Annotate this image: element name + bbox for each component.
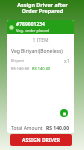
staticText: 1 ITEM [7, 37, 74, 44]
staticText: #789001234 [16, 21, 45, 28]
staticText: Total Amount [11, 125, 43, 132]
staticText: Veg Biriyani(Boneless) [11, 48, 63, 55]
staticText: Biryani [11, 58, 25, 63]
staticText: ASSIGN DRIVER [22, 137, 61, 144]
button[interactable]: ASSIGN DRIVER [10, 134, 72, 146]
button[interactable]: Order bag [60, 109, 68, 117]
staticText: Veg. order placed [16, 28, 49, 33]
staticText: x1 [64, 58, 70, 65]
staticText: RS 140.00 [32, 66, 51, 71]
staticText: RS 140.00 [46, 125, 70, 132]
button[interactable]: #789001234 [7, 20, 74, 34]
staticText: RS 140.00 [11, 66, 30, 71]
staticText: Assign Driver after Order Prepared [17, 1, 68, 14]
